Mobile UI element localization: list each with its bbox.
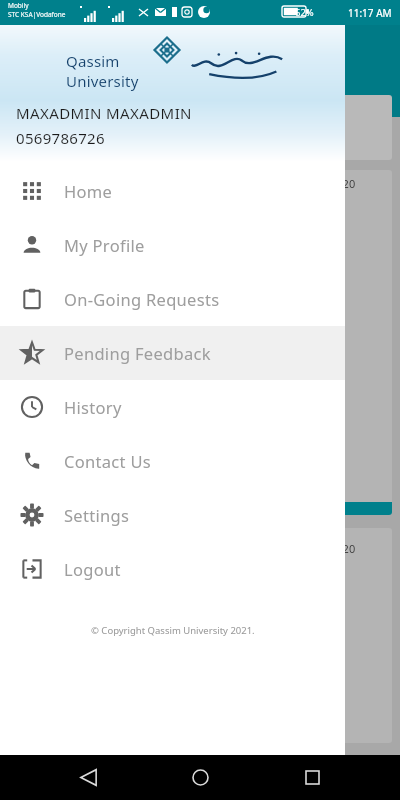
staticText: 2020 — [330, 176, 356, 191]
staticText: 62% — [295, 6, 314, 19]
button[interactable]: Recent apps — [288, 755, 336, 800]
staticText: 0569786726 — [16, 128, 105, 148]
staticText: 11:17 AM — [348, 6, 392, 20]
staticText: © Copyright Qassim University 2021. — [91, 624, 255, 637]
staticText: STC KSA|Vodafone — [8, 10, 66, 19]
staticText: On-Going Requests — [64, 288, 220, 310]
button[interactable]: My Profile — [0, 218, 345, 272]
button[interactable]: Pending Feedback — [0, 326, 345, 380]
button[interactable]: History — [0, 380, 345, 434]
button[interactable]: Contact Us — [0, 434, 345, 488]
staticText: Pending Feedback — [64, 342, 211, 364]
staticText: Settings — [64, 504, 130, 526]
button[interactable]: Home — [0, 164, 345, 218]
staticText: Logout — [64, 558, 121, 580]
staticText: Qassim — [66, 51, 120, 71]
staticText: University — [66, 71, 139, 91]
button[interactable]: Settings — [0, 488, 345, 542]
button[interactable]: On-Going Requests — [0, 272, 345, 326]
staticText: 2020 — [330, 541, 356, 556]
staticText: My Profile — [64, 234, 145, 256]
button[interactable]: Home — [176, 755, 224, 800]
staticText: Home — [64, 180, 113, 202]
staticText: History — [64, 396, 122, 418]
staticText: Mobily — [8, 1, 29, 10]
staticText: MAXADMIN MAXADMIN — [16, 103, 192, 123]
button[interactable]: Back — [64, 755, 112, 800]
button[interactable]: Logout — [0, 542, 345, 596]
staticText: مد — [336, 371, 346, 381]
staticText: Contact Us — [64, 450, 151, 472]
